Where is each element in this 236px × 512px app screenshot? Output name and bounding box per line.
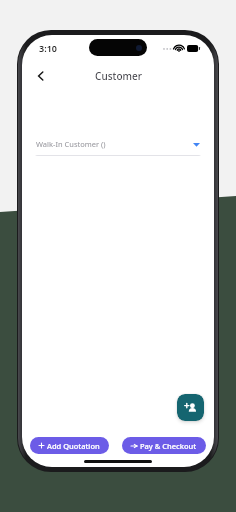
- button[interactable]: Walk-In Customer (): [34, 133, 202, 156]
- staticText: Customer: [95, 69, 142, 83]
- staticText: 3:10: [39, 42, 57, 54]
- button[interactable]: Add customer: [177, 394, 204, 421]
- button[interactable]: Back: [28, 63, 54, 89]
- staticText: Pay & Checkout: [140, 441, 197, 451]
- button[interactable]: Add Quotation: [30, 437, 109, 454]
- button[interactable]: Pay & Checkout: [122, 437, 206, 454]
- staticText: Add Quotation: [47, 441, 100, 451]
- staticText: Walk-In Customer (): [36, 139, 106, 149]
